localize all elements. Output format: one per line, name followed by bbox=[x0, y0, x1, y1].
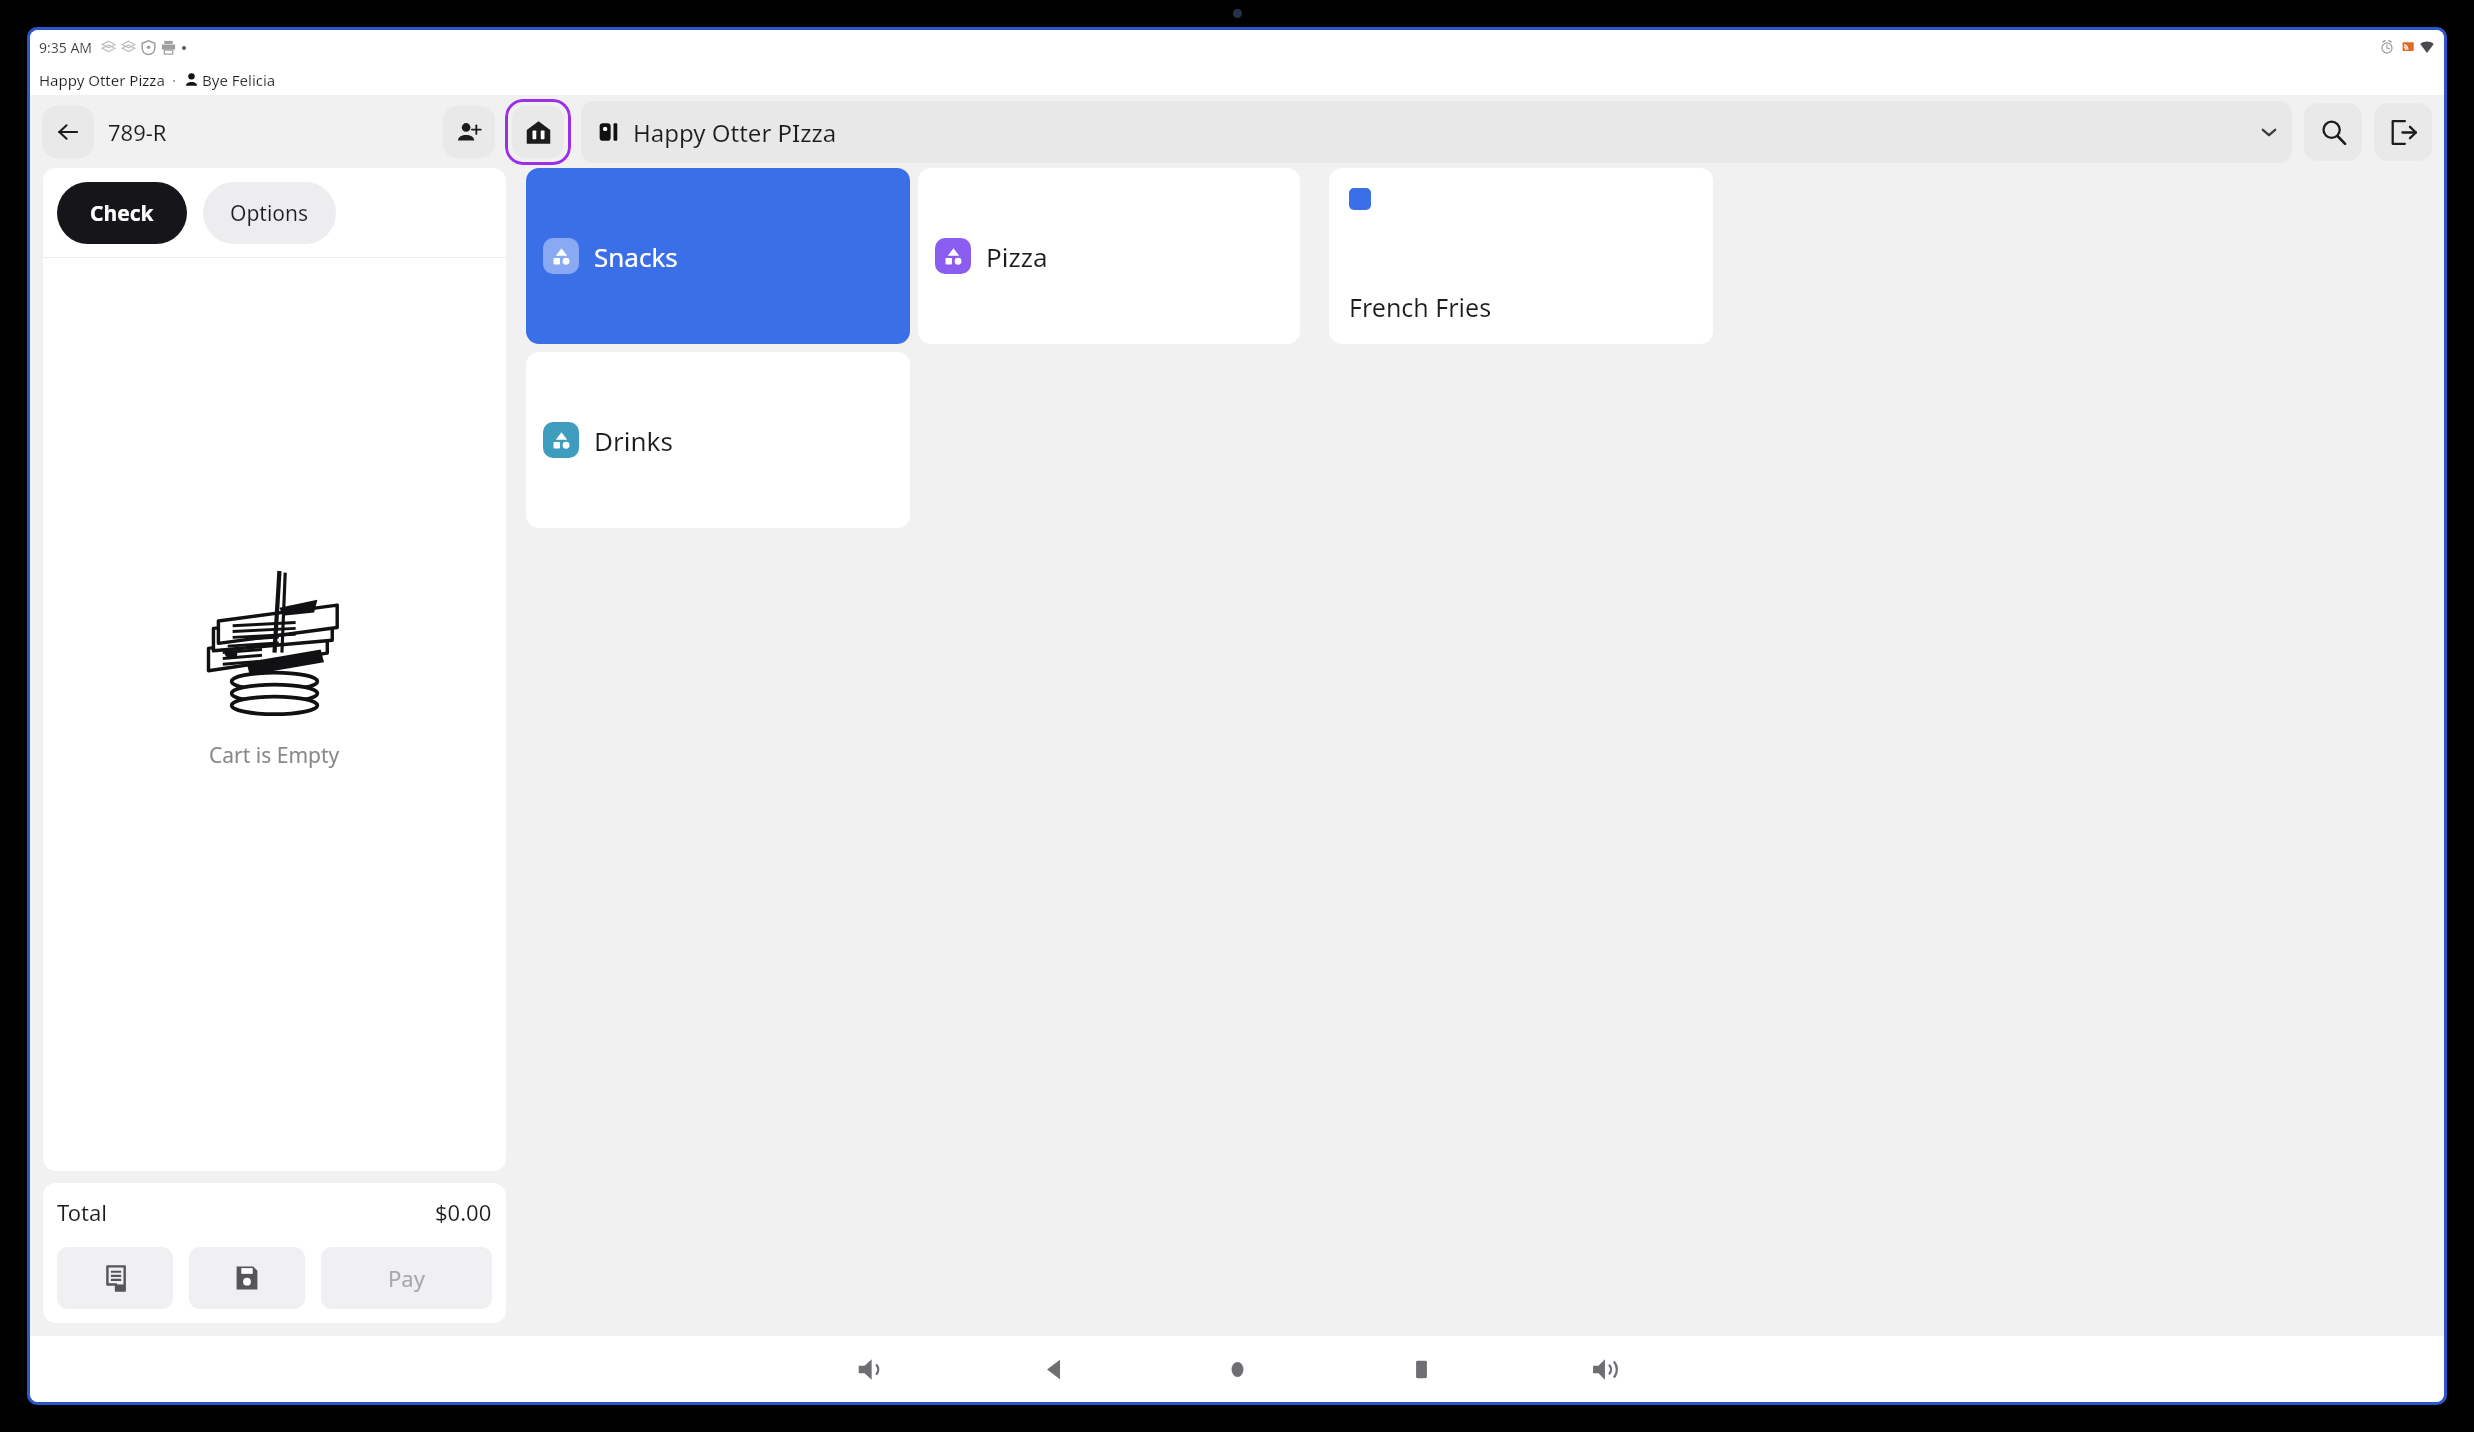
button[interactable]: Happy Otter PIzza bbox=[581, 101, 2292, 163]
staticText: Check bbox=[90, 199, 154, 228]
staticText: Drinks bbox=[594, 423, 673, 458]
staticText: 9:35 AM bbox=[39, 38, 93, 57]
staticText: Snacks bbox=[594, 239, 678, 274]
button[interactable]: Volume down bbox=[841, 1341, 897, 1397]
staticText: Happy Otter PIzza bbox=[633, 116, 837, 149]
staticText: · bbox=[172, 70, 177, 90]
staticText: Bye Felicia bbox=[202, 70, 276, 90]
staticText: Pizza bbox=[986, 239, 1048, 274]
button[interactable]: Back bbox=[1025, 1341, 1081, 1397]
button[interactable]: Back bbox=[42, 106, 94, 158]
button[interactable]: Home bbox=[505, 99, 571, 165]
staticText: 789-R bbox=[108, 117, 167, 147]
button[interactable]: Search bbox=[2304, 103, 2362, 161]
button[interactable]: Check bbox=[57, 182, 187, 244]
staticText: Pay bbox=[388, 1263, 425, 1293]
button[interactable]: Pay bbox=[321, 1247, 492, 1309]
staticText: French Fries bbox=[1349, 290, 1492, 324]
button[interactable]: Home bbox=[1209, 1341, 1265, 1397]
button[interactable]: Log out bbox=[2374, 103, 2432, 161]
staticText: Total bbox=[57, 1197, 107, 1227]
button[interactable]: Save bbox=[189, 1247, 305, 1309]
staticText: Happy Otter Pizza bbox=[39, 70, 165, 90]
button[interactable]: Volume up bbox=[1577, 1341, 1633, 1397]
button[interactable]: Drinks bbox=[526, 352, 910, 528]
button[interactable]: Options bbox=[203, 182, 336, 244]
button[interactable]: Add guest bbox=[443, 106, 495, 158]
button[interactable]: Pizza bbox=[918, 168, 1300, 344]
staticText: Options bbox=[230, 199, 309, 228]
button[interactable]: French Fries bbox=[1329, 168, 1713, 344]
staticText: $0.00 bbox=[435, 1197, 492, 1227]
button[interactable]: Recents bbox=[1393, 1341, 1449, 1397]
staticText: Cart is Empty bbox=[209, 741, 340, 770]
button[interactable]: Snacks bbox=[526, 168, 910, 344]
button[interactable]: Print receipt bbox=[57, 1247, 173, 1309]
